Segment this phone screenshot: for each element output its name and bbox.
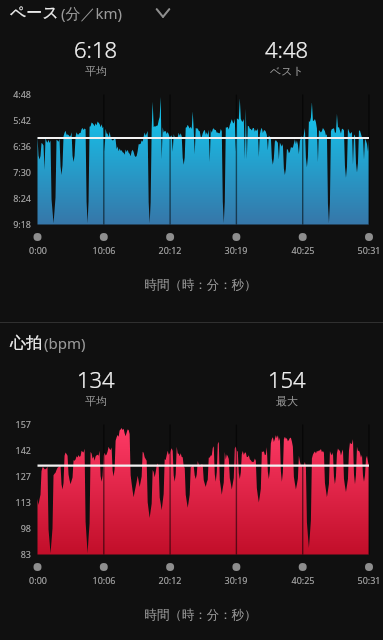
staticText: 最大 — [276, 394, 298, 408]
staticText: 時間（時：分：秒） — [9, 607, 383, 623]
staticText: 0:00 — [8, 244, 68, 256]
staticText: 6:36 — [0, 140, 31, 152]
button[interactable]: ペース — [0, 0, 383, 29]
staticText: (bpm) — [44, 333, 86, 353]
staticText: 50:31 — [339, 574, 383, 586]
staticText: ペース — [10, 3, 59, 23]
staticText: 9:18 — [0, 218, 31, 230]
staticText: 7:30 — [0, 166, 31, 178]
staticText: 50:31 — [339, 244, 383, 256]
staticText: 8:24 — [0, 192, 31, 204]
staticText: ベスト — [270, 64, 304, 78]
staticText: 10:06 — [74, 574, 134, 586]
staticText: 10:06 — [74, 244, 134, 256]
staticText: 98 — [0, 522, 31, 534]
staticText: 0:00 — [8, 574, 68, 586]
staticText: (分／km) — [61, 3, 123, 23]
staticText: 154 — [268, 364, 306, 394]
staticText: 127 — [0, 470, 31, 482]
staticText: 20:12 — [140, 244, 200, 256]
staticText: 113 — [0, 496, 31, 508]
staticText: 平均 — [85, 64, 107, 78]
staticText: 5:42 — [0, 114, 31, 126]
button[interactable]: 154 — [191, 364, 383, 408]
staticText: 83 — [0, 548, 31, 560]
button[interactable]: Change metric — [151, 1, 175, 25]
staticText: 20:12 — [140, 574, 200, 586]
staticText: 142 — [0, 444, 31, 456]
button[interactable]: 134 — [0, 364, 191, 408]
staticText: 心拍 — [10, 333, 42, 353]
staticText: 40:25 — [273, 574, 333, 586]
staticText: 157 — [0, 418, 31, 430]
staticText: 40:25 — [273, 244, 333, 256]
staticText: 30:19 — [206, 244, 266, 256]
button[interactable]: 4:48 — [191, 34, 383, 78]
staticText: 4:48 — [265, 34, 309, 64]
staticText: 時間（時：分：秒） — [9, 277, 383, 293]
staticText: 6:18 — [74, 34, 118, 64]
staticText: 4:48 — [0, 88, 31, 100]
button[interactable]: 6:18 — [0, 34, 191, 78]
staticText: 平均 — [85, 394, 107, 408]
staticText: 134 — [77, 364, 115, 394]
button[interactable]: 心拍 — [0, 326, 383, 359]
staticText: 30:19 — [206, 574, 266, 586]
